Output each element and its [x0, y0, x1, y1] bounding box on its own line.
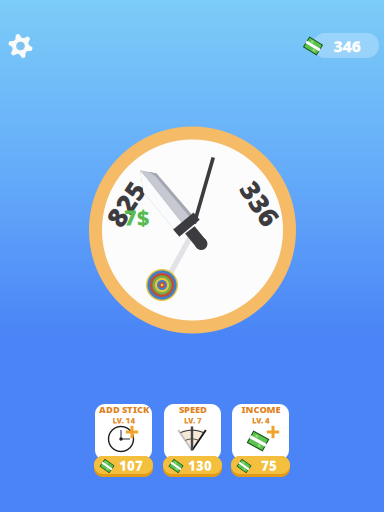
staticText: INCOME — [241, 403, 280, 416]
button[interactable]: SPEED — [0, 0, 384, 512]
staticText: 346 — [333, 35, 360, 57]
staticText: LV. 7 — [184, 415, 202, 426]
staticText: 336 — [236, 186, 284, 221]
staticText: LV. 14 — [112, 415, 135, 426]
button[interactable]: INCOME — [0, 0, 384, 512]
staticText: 130 — [188, 457, 212, 474]
staticText: LV. 4 — [252, 415, 270, 426]
button[interactable]: Settings — [0, 0, 384, 512]
staticText: 107 — [119, 457, 143, 474]
staticText: SPEED — [179, 403, 207, 416]
staticText: 7$ — [124, 203, 149, 231]
staticText: 825 — [102, 186, 150, 221]
staticText: 75 — [261, 457, 277, 474]
button[interactable]: Coins: 346 — [0, 0, 384, 512]
button[interactable]: ADD STICK — [0, 0, 384, 512]
staticText: ADD STICK — [99, 403, 149, 416]
